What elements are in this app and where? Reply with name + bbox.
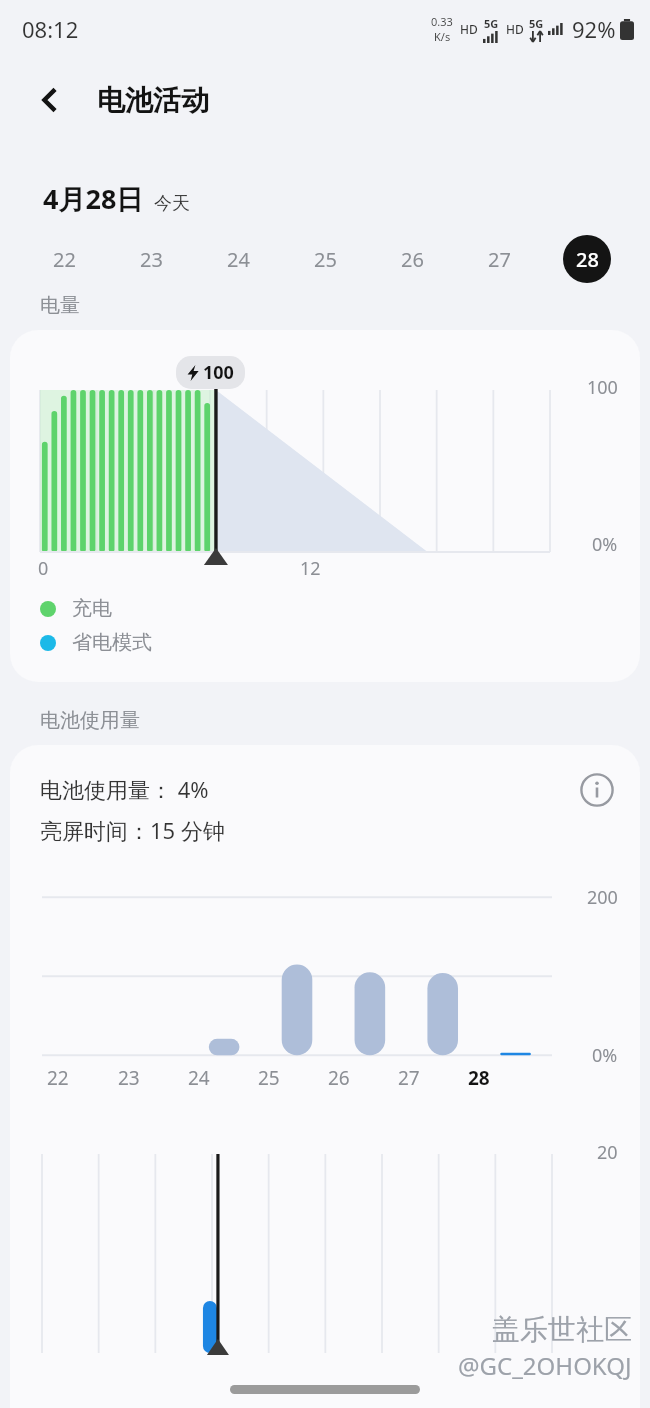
button[interactable]: 22 [20,231,108,287]
button[interactable]: 返回 [22,72,78,128]
staticText: 20 [597,1140,618,1165]
staticText: HD [460,21,478,37]
staticText: 今天 [154,192,190,215]
staticText: 26 [328,1065,350,1091]
staticText: 0% [592,1043,618,1068]
staticText: 100 [587,375,618,400]
staticText: 电池使用量 [40,708,140,733]
staticText: 盖乐世社区 [492,1312,632,1347]
staticText: 23 [118,1065,140,1091]
staticText: 25 [314,246,337,273]
button[interactable]: 27 [456,231,543,287]
button[interactable]: 100 [10,330,640,682]
staticText: 电池活动 [97,83,209,118]
button[interactable]: 23 [108,231,195,287]
staticText: 亮屏时间：15 分钟 [40,815,225,845]
staticText: 92% [572,14,616,44]
staticText: 27 [398,1065,420,1091]
staticText: 08:12 [22,14,79,44]
staticText: K/s [434,29,451,44]
staticText: 5G [529,16,544,31]
staticText: @GC_2OHOKQJ [458,1349,632,1382]
staticText: 100 [203,360,234,385]
staticText: 24 [227,246,250,273]
button[interactable]: 26 [369,231,456,287]
staticText: 4月28日 [43,180,144,217]
staticText: 省电模式 [72,630,152,655]
staticText: 5G [484,16,499,31]
button[interactable]: 24 [195,231,282,287]
staticText: 电量 [40,293,80,318]
staticText: 22 [47,1065,69,1091]
button[interactable]: 25 [282,231,369,287]
staticText: 23 [140,246,163,273]
staticText: 充电 [72,596,112,621]
staticText: 28 [576,246,599,273]
button[interactable]: 信息 [574,767,620,813]
staticText: 27 [488,246,511,273]
staticText: HD [506,21,524,37]
staticText: 200 [587,885,618,910]
staticText: 0% [592,532,618,557]
staticText: 25 [258,1065,280,1091]
staticText: 24 [188,1065,210,1091]
button[interactable]: 28 [543,231,630,287]
staticText: 0.33 [431,14,453,29]
staticText: 28 [468,1065,490,1091]
staticText: 电池使用量： 4% [40,774,209,804]
staticText: 12 [300,556,321,581]
staticText: 22 [53,246,76,273]
staticText: 0 [38,556,49,581]
staticText: 26 [401,246,424,273]
